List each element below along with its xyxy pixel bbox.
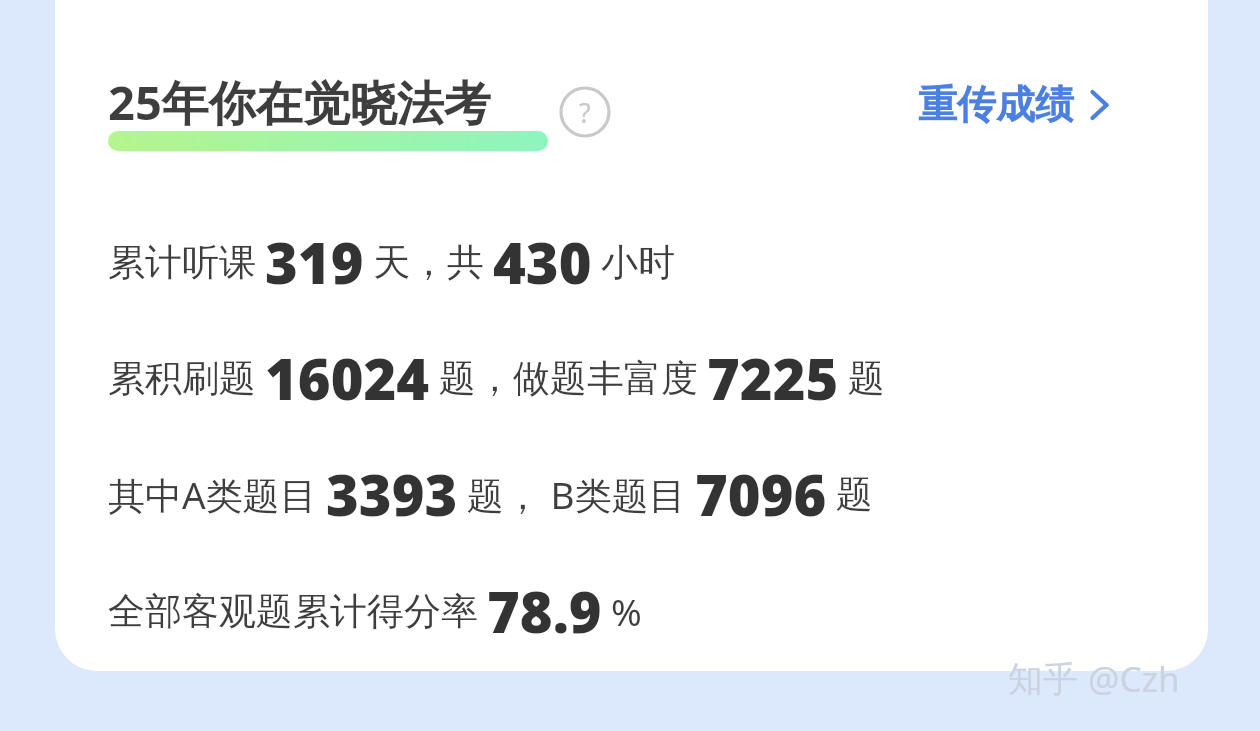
staticText: 430 bbox=[493, 224, 592, 300]
button[interactable]: 重传成绩 bbox=[918, 80, 1112, 129]
staticText: 题 bbox=[836, 471, 873, 518]
staticText: 319 bbox=[265, 224, 364, 300]
staticText: 题，做题丰富度 bbox=[439, 355, 698, 402]
staticText: 25年你在觉晓法考 bbox=[108, 70, 491, 134]
staticText: 7096 bbox=[695, 456, 827, 532]
staticText: 题， B类题目 bbox=[467, 469, 686, 520]
staticText: 重传成绩 bbox=[918, 80, 1074, 129]
staticText: 题 bbox=[848, 355, 885, 402]
staticText: 累计听课 bbox=[108, 239, 256, 286]
staticText: 其中A类题目 bbox=[108, 469, 317, 520]
staticText: 78.9 bbox=[487, 573, 602, 649]
staticText: 知乎 bbox=[1008, 657, 1078, 701]
staticText: 天，共 bbox=[373, 239, 484, 286]
staticText: 小时 bbox=[601, 239, 675, 286]
staticText: 3393 bbox=[326, 456, 458, 532]
staticText: ? bbox=[579, 94, 591, 131]
staticText: % bbox=[611, 586, 642, 636]
staticText: @Czh bbox=[1088, 655, 1180, 703]
staticText: 7225 bbox=[707, 340, 839, 416]
staticText: 累积刷题 bbox=[108, 355, 256, 402]
button[interactable]: 25年你在觉晓法考 bbox=[108, 70, 548, 134]
staticText: 16024 bbox=[265, 340, 430, 416]
staticText: 全部客观题累计得分率 bbox=[108, 588, 478, 635]
button[interactable]: 帮助说明 bbox=[559, 86, 611, 138]
